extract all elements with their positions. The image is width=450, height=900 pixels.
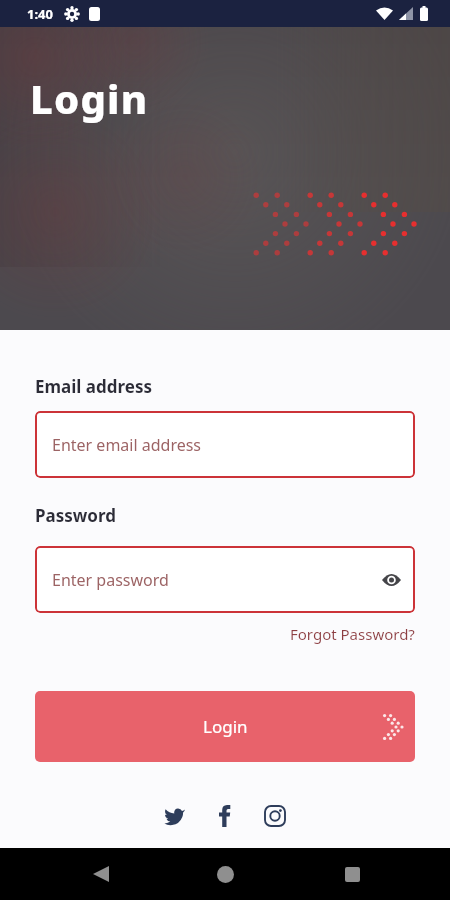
button[interactable]: Enter password xyxy=(35,546,415,613)
button[interactable] xyxy=(163,804,187,828)
staticText: Password xyxy=(35,504,116,527)
button[interactable] xyxy=(263,804,287,828)
button[interactable]: Enter email address xyxy=(35,411,415,478)
button[interactable]: Login xyxy=(35,691,415,762)
button[interactable] xyxy=(213,862,237,886)
button[interactable] xyxy=(89,862,113,886)
staticText: 1:40 xyxy=(27,5,53,23)
staticText: Email address xyxy=(35,375,152,398)
staticText: Login xyxy=(30,71,149,125)
button[interactable] xyxy=(340,862,364,886)
staticText: Login xyxy=(203,715,248,738)
button[interactable] xyxy=(213,804,237,828)
staticText: Enter email address xyxy=(52,434,202,456)
staticText: Enter password xyxy=(52,569,169,591)
button[interactable]: Forgot Password? xyxy=(290,624,415,644)
